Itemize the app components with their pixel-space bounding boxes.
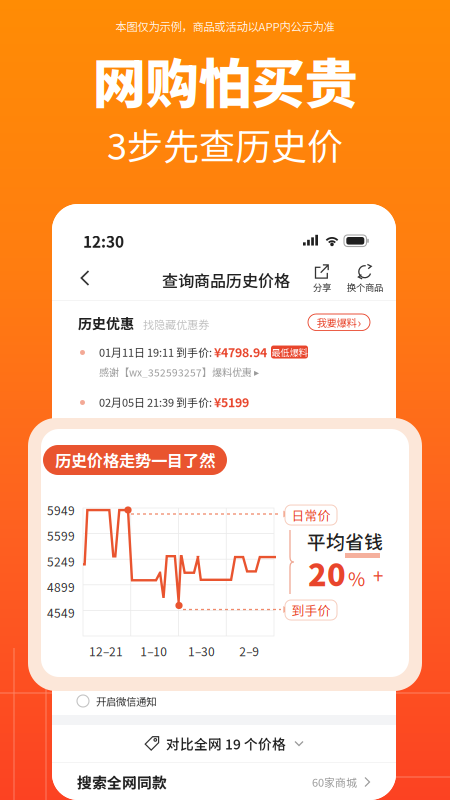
- staticText: 02月05日 21:39 到手价:: [99, 394, 214, 410]
- staticText: 60家商城: [312, 774, 357, 790]
- staticText: 感谢【wx_352593257】爆料优惠 ▸: [99, 365, 259, 379]
- staticText: ›: [357, 314, 361, 331]
- staticText: +: [373, 561, 383, 588]
- staticText: 12–21: [89, 642, 123, 660]
- staticText: 查询商品历史价格: [162, 268, 290, 292]
- staticText: 历史价格走势一目了然: [55, 448, 215, 472]
- staticText: 1–30: [188, 642, 215, 660]
- staticText: 历史优惠: [78, 313, 134, 333]
- button[interactable]: 我要爆料: [308, 314, 370, 330]
- staticText: 对比全网 19 个价格: [166, 734, 286, 753]
- staticText: 分享: [313, 280, 331, 294]
- staticText: ¥5199: [214, 393, 249, 411]
- staticText: 开启微信通知: [96, 693, 156, 709]
- button[interactable]: 换个商品: [342, 262, 388, 294]
- staticText: 平均省钱: [307, 527, 383, 554]
- staticText: 2–9: [239, 642, 259, 660]
- button[interactable]: 搜索全网同款: [52, 763, 396, 800]
- staticText: 4549: [47, 604, 75, 621]
- staticText: 搜索全网同款: [77, 771, 167, 793]
- staticText: 20: [308, 551, 346, 595]
- staticText: 找隐藏优惠券: [143, 316, 209, 332]
- button[interactable]: 分享: [305, 262, 339, 294]
- staticText: 12:30: [83, 230, 124, 252]
- staticText: 我要爆料: [316, 315, 356, 330]
- button[interactable]: 开启微信通知: [52, 686, 396, 716]
- staticText: 5249: [47, 552, 75, 570]
- staticText: 1–10: [140, 642, 167, 660]
- staticText: 网购怕买贵: [92, 41, 357, 119]
- staticText: 本图仅为示例，商品或活动以APP内公示为准: [115, 18, 334, 34]
- staticText: 4899: [47, 578, 75, 595]
- staticText: 到手价: [291, 601, 330, 619]
- button[interactable]: 返回: [66, 259, 104, 297]
- button[interactable]: 对比全网 19 个价格: [52, 725, 396, 762]
- staticText: ¥4798.94: [214, 343, 267, 361]
- staticText: 5599: [47, 527, 75, 544]
- staticText: 3步先查历史价: [107, 118, 343, 170]
- staticText: 01月11日 19:11 到手价:: [99, 344, 214, 360]
- staticText: %: [348, 564, 365, 591]
- staticText: 最低爆料: [271, 345, 307, 359]
- staticText: 5949: [47, 501, 75, 519]
- staticText: 换个商品: [347, 280, 383, 294]
- staticText: 日常价: [291, 506, 330, 524]
